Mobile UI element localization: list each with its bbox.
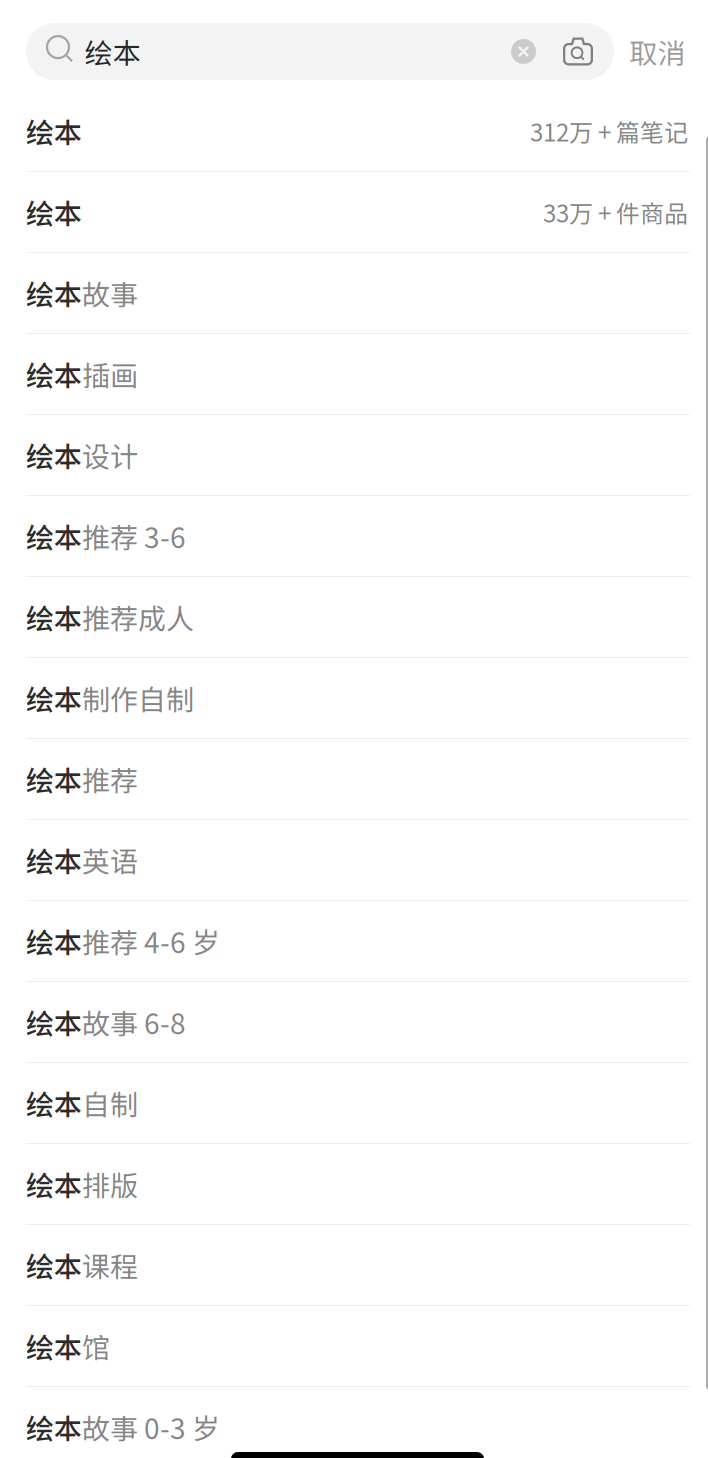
staticText: 绘本: [26, 921, 82, 961]
staticText: 故事: [82, 273, 138, 313]
staticText: 绘本: [26, 516, 82, 556]
staticText: 绘本: [26, 192, 82, 232]
button[interactable]: 绘本: [0, 982, 708, 1063]
staticText: 绘本: [26, 435, 82, 475]
staticText: 绘本: [26, 759, 82, 799]
staticText: 推荐 4-6 岁: [82, 921, 220, 961]
staticText: 故事 6-8: [82, 1002, 186, 1042]
staticText: 排版: [82, 1164, 138, 1204]
staticText: 制作自制: [82, 678, 194, 718]
button[interactable]: 绘本: [0, 1387, 708, 1458]
button[interactable]: 绘本: [0, 172, 708, 253]
button[interactable]: 绘本: [0, 739, 708, 820]
button[interactable]: 绘本: [0, 820, 708, 901]
staticText: 绘本: [26, 597, 82, 637]
staticText: 推荐成人: [82, 597, 194, 637]
button[interactable]: 绘本: [0, 253, 708, 334]
button[interactable]: 取消: [614, 23, 701, 80]
staticText: 绘本: [26, 1245, 82, 1285]
staticText: 绘本: [26, 1083, 82, 1123]
button[interactable]: 绘本: [0, 496, 708, 577]
button[interactable]: 清除: [504, 39, 563, 64]
staticText: 馆: [82, 1326, 110, 1366]
staticText: 绘本: [26, 354, 82, 394]
button[interactable]: 绘本: [0, 1225, 708, 1306]
button[interactable]: 绘本: [0, 658, 708, 739]
staticText: 绘本: [26, 273, 82, 313]
staticText: 自制: [82, 1083, 138, 1123]
staticText: 设计: [82, 435, 138, 475]
button[interactable]: 绘本: [0, 1144, 708, 1225]
staticText: 312万 + 篇笔记: [530, 114, 688, 148]
staticText: 取消: [629, 31, 685, 72]
staticText: 绘本: [85, 31, 141, 72]
button[interactable]: 绘本: [0, 1306, 708, 1387]
staticText: 绘本: [26, 111, 82, 151]
button[interactable]: 绘本: [0, 901, 708, 982]
staticText: 33万 + 件商品: [543, 195, 688, 229]
button[interactable]: 绘本: [0, 577, 708, 658]
staticText: 绘本: [26, 1002, 82, 1042]
button[interactable]: 绘本: [0, 91, 708, 172]
staticText: 故事 0-3 岁: [82, 1407, 220, 1447]
staticText: 绘本: [26, 678, 82, 718]
staticText: 绘本: [26, 840, 82, 880]
button[interactable]: 绘本: [0, 415, 708, 496]
staticText: 英语: [82, 840, 138, 880]
staticText: 绘本: [26, 1407, 82, 1447]
staticText: 绘本: [26, 1326, 82, 1366]
staticText: 推荐: [82, 759, 138, 799]
button[interactable]: 绘本: [0, 334, 708, 415]
staticText: 推荐 3-6: [82, 516, 186, 556]
button[interactable]: 绘本: [0, 1063, 708, 1144]
button[interactable]: 拍照搜索: [563, 37, 614, 65]
staticText: 课程: [82, 1245, 138, 1285]
staticText: 绘本: [26, 1164, 82, 1204]
staticText: 插画: [82, 354, 138, 394]
